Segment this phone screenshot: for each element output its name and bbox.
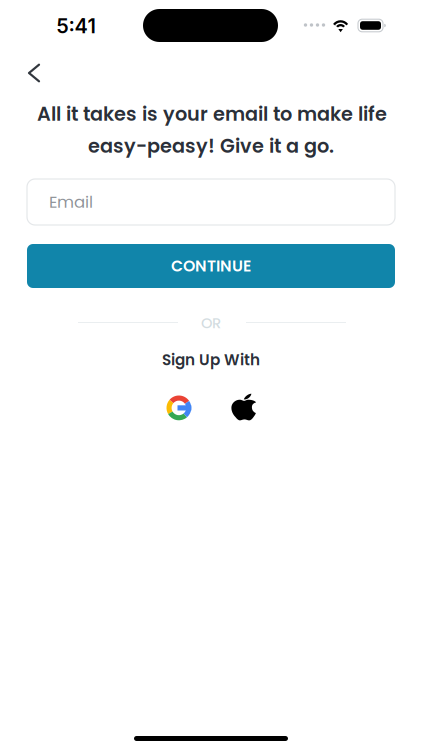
- button[interactable]: Back: [6, 50, 62, 96]
- staticText: Email: [49, 190, 93, 213]
- staticText: 5:41: [56, 14, 95, 38]
- staticText: OR: [201, 313, 221, 333]
- button[interactable]: Sign up with Apple: [217, 391, 271, 423]
- button[interactable]: Sign up with Google: [155, 386, 203, 430]
- staticText: All it takes is your email to make life: [37, 100, 387, 127]
- staticText: Sign Up With: [162, 349, 260, 371]
- button[interactable]: CONTINUE: [27, 244, 395, 288]
- staticText: CONTINUE: [171, 255, 251, 277]
- staticText: easy-peasy! Give it a go.: [88, 132, 334, 159]
